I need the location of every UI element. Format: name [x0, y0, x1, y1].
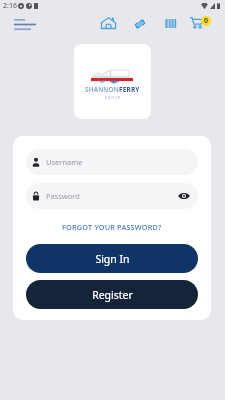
button[interactable]: Cart: [187, 11, 211, 32]
staticText: G R O U P: [105, 95, 121, 100]
staticText: Username: [46, 157, 83, 167]
button[interactable]: Tickets: [129, 13, 150, 34]
button[interactable]: Password: [26, 183, 198, 209]
staticText: 2:16: [3, 1, 17, 11]
button[interactable]: Sign In: [26, 244, 198, 273]
button[interactable]: Username: [26, 149, 198, 175]
staticText: Password: [46, 191, 80, 201]
staticText: 0: [204, 16, 209, 26]
staticText: Register: [92, 288, 133, 302]
button[interactable]: FORGOT YOUR PASSWORD?: [58, 220, 166, 234]
button[interactable]: Menu: [8, 13, 42, 35]
button[interactable]: Register: [26, 280, 198, 309]
button[interactable]: Show password: [177, 189, 190, 203]
button[interactable]: Scan barcode: [160, 13, 181, 34]
staticText: FERRY: [119, 85, 140, 94]
staticText: SHANNON: [85, 85, 119, 94]
staticText: Sign In: [95, 252, 130, 266]
button[interactable]: Home: [98, 12, 119, 33]
staticText: FORGOT YOUR PASSWORD?: [62, 222, 162, 232]
